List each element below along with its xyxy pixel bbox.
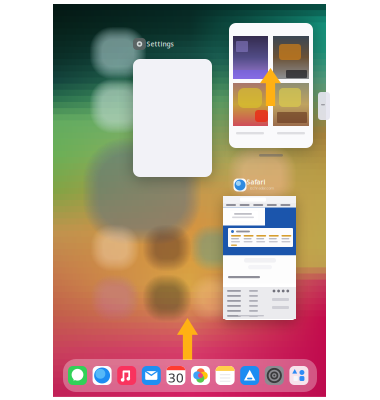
button[interactable]: Photos slide over window — [148, 137, 232, 262]
button[interactable]: Safari — [180, 190, 199, 209]
staticText: 30 — [168, 368, 184, 386]
staticText: Settings — [146, 40, 173, 48]
button[interactable]: Shortcuts — [180, 190, 199, 209]
button[interactable]: App Store — [180, 190, 199, 209]
button[interactable]: Safari window — [153, 138, 226, 262]
button[interactable]: Settings — [180, 190, 199, 209]
button[interactable]: Music — [180, 190, 199, 209]
button[interactable]: Notes — [180, 190, 199, 209]
button[interactable]: Photos — [180, 190, 199, 209]
staticText: techradar.com — [249, 185, 274, 191]
button[interactable]: Mail — [180, 190, 199, 209]
staticText: Safari — [246, 178, 265, 186]
button[interactable]: Settings window — [150, 141, 229, 259]
button[interactable]: Calendar — [180, 190, 199, 209]
button[interactable]: Messages — [180, 190, 199, 209]
